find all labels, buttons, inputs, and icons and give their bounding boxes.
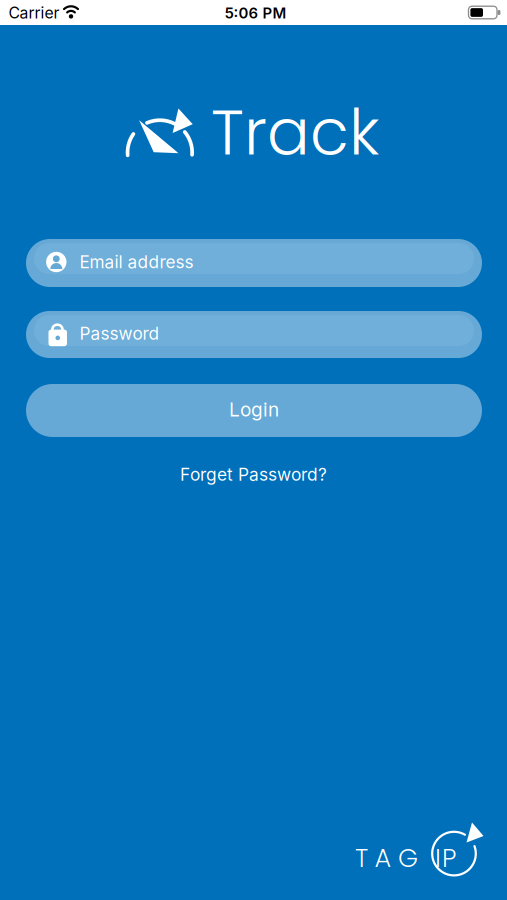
staticText: IP [435, 840, 456, 876]
staticText: TAG [355, 840, 418, 876]
staticText: Track [211, 88, 379, 177]
staticText: Login [229, 398, 279, 421]
staticText: Password [80, 323, 160, 344]
button[interactable]: Email address [26, 239, 482, 287]
button[interactable]: Password [26, 311, 482, 358]
button[interactable]: Login [26, 384, 482, 437]
staticText: Forget Password? [180, 464, 327, 485]
staticText: Carrier [8, 3, 59, 22]
staticText: 5:06 PM [224, 4, 286, 22]
button[interactable]: Forget Password? [180, 464, 327, 485]
staticText: Email address [80, 252, 194, 272]
